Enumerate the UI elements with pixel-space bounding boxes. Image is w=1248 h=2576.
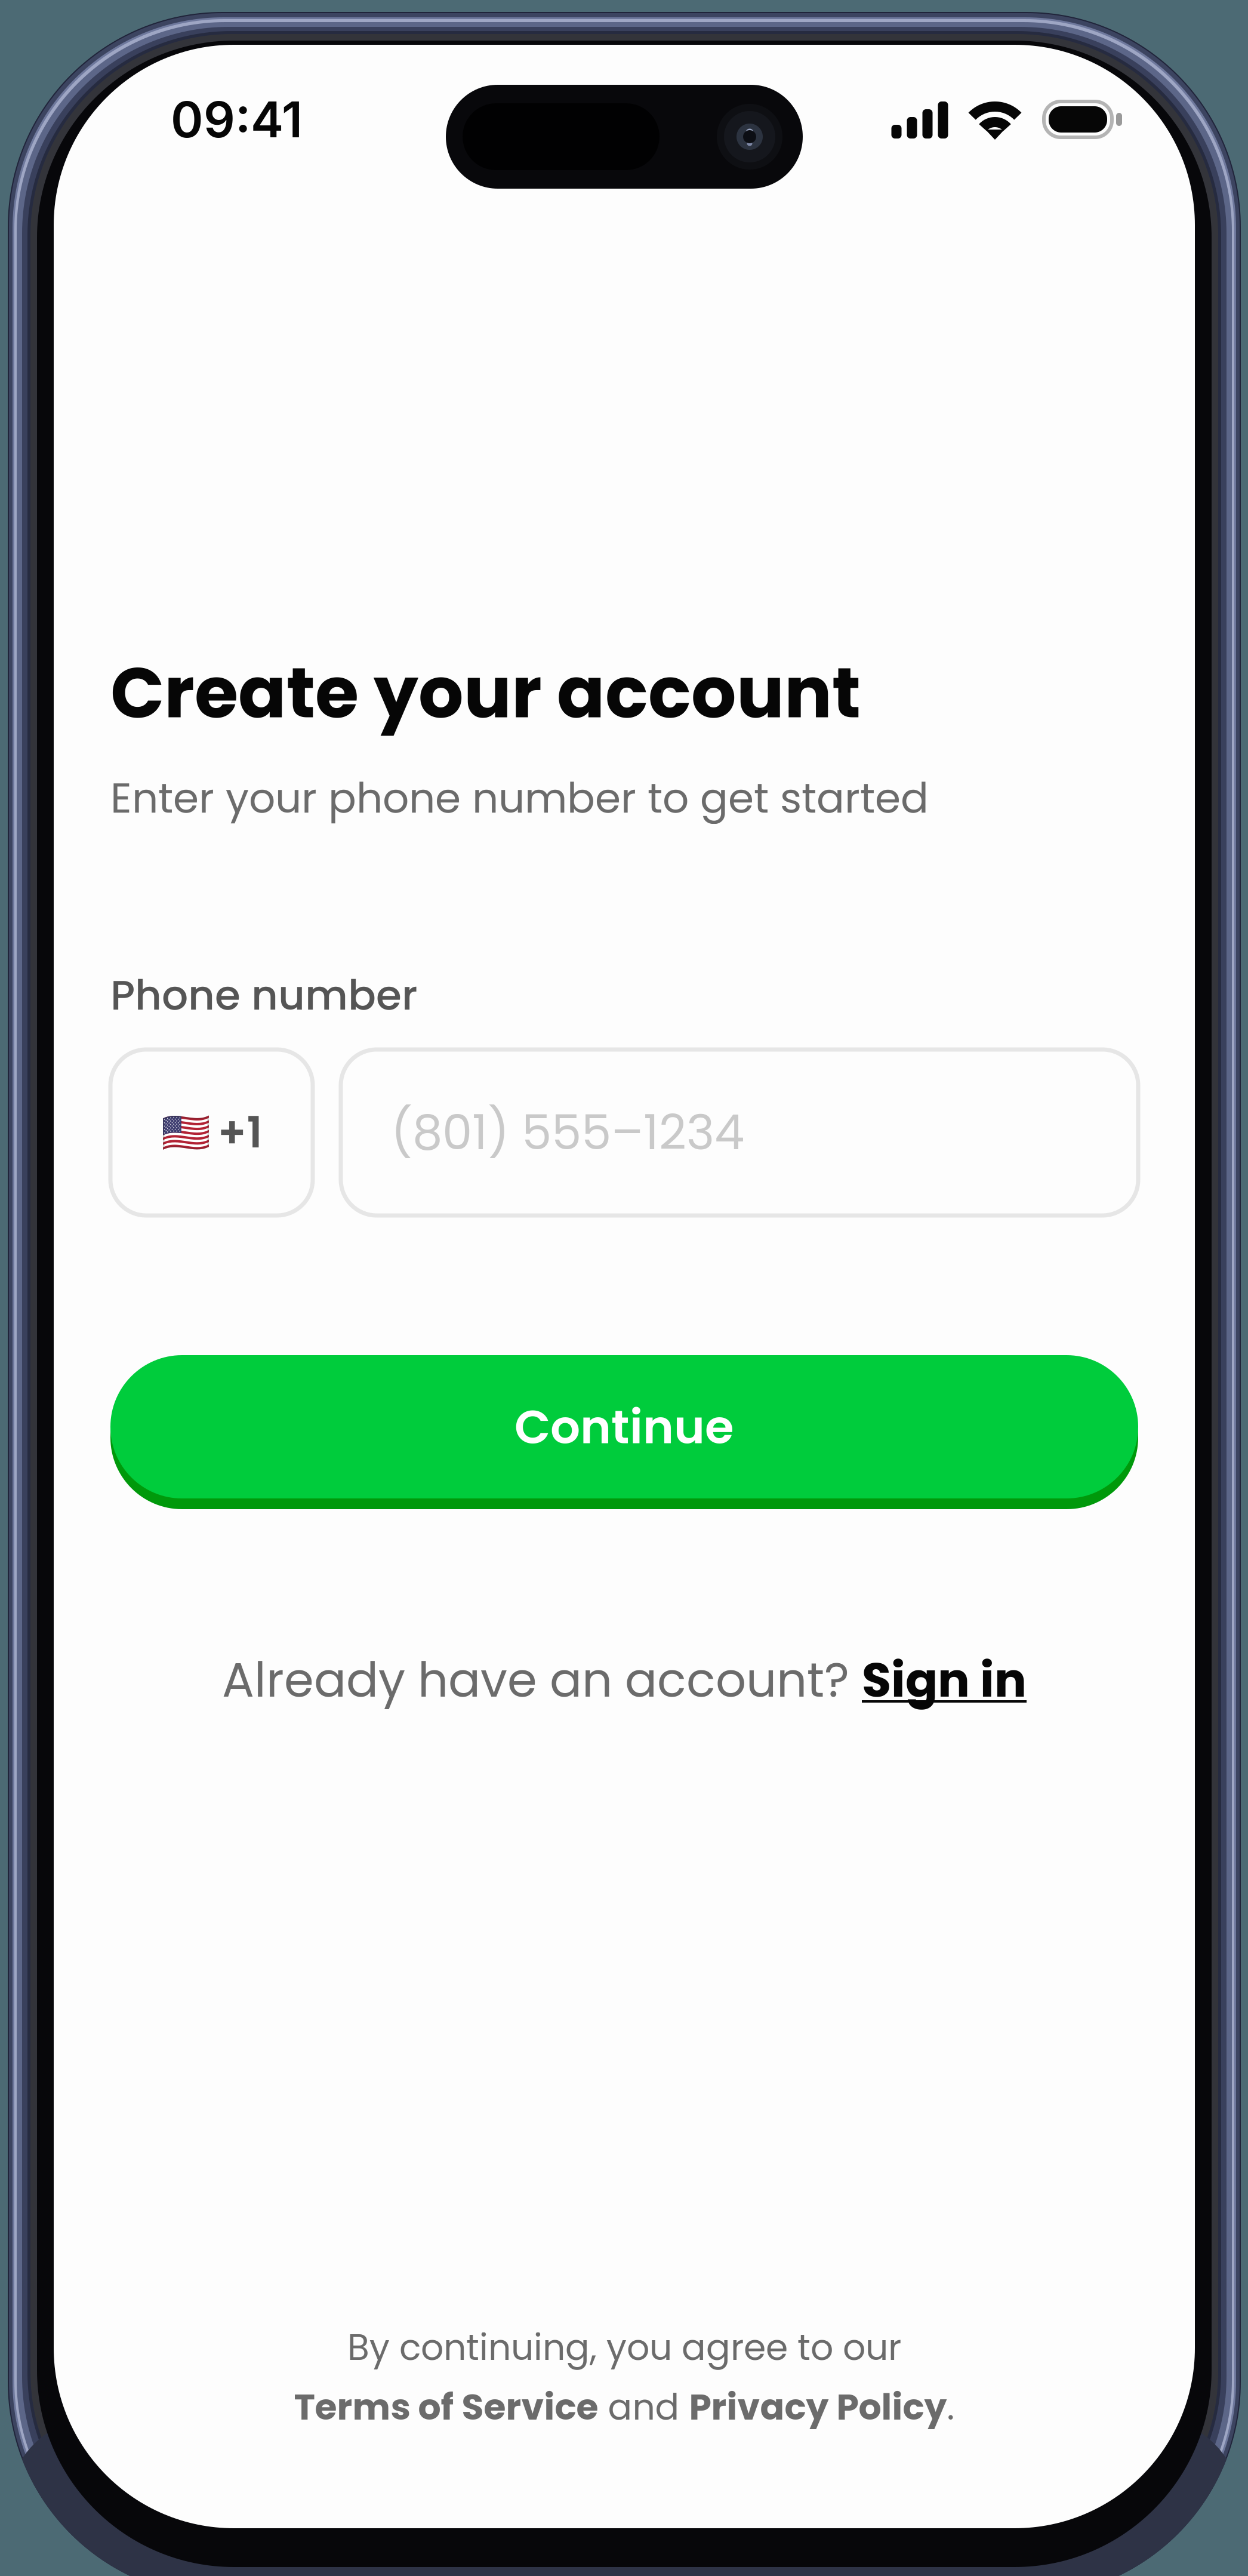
staticText: Enter your phone number to get started bbox=[110, 769, 929, 827]
staticText: Phone number bbox=[110, 966, 418, 1024]
staticText: Sign in bbox=[862, 1646, 1027, 1713]
staticText: 09:41 bbox=[171, 90, 303, 149]
button[interactable]: Terms of Service bbox=[294, 2382, 598, 2432]
staticText: Terms of Service bbox=[294, 2382, 598, 2432]
staticText: +1 bbox=[218, 1102, 262, 1163]
staticText: (801) 555–1234 bbox=[391, 1099, 744, 1166]
staticText: and bbox=[598, 2382, 689, 2432]
button[interactable]: Phone number bbox=[341, 1050, 1138, 1215]
button[interactable]: Country code, United States, plus 1 bbox=[110, 1050, 313, 1215]
button[interactable]: Privacy Policy bbox=[689, 2382, 947, 2432]
staticText: 🇺🇸 bbox=[161, 1109, 210, 1156]
staticText: By continuing, you agree to our bbox=[347, 2322, 901, 2372]
staticText: Already have an account? bbox=[222, 1646, 862, 1713]
button[interactable]: Sign in bbox=[862, 1646, 1027, 1713]
staticText: . bbox=[947, 2382, 955, 2432]
staticText: Continue bbox=[514, 1394, 734, 1460]
staticText: Privacy Policy bbox=[689, 2382, 947, 2432]
staticText: Create your account bbox=[110, 643, 861, 742]
button[interactable]: Continue bbox=[110, 1350, 1138, 1504]
